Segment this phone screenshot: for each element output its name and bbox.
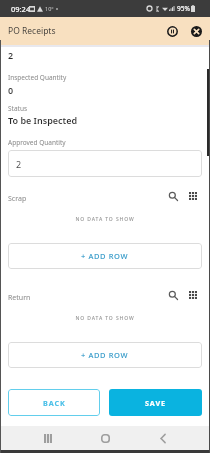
staticText: 2 xyxy=(16,158,22,170)
staticText: + ADD ROW xyxy=(81,350,129,360)
staticText: 0 xyxy=(8,84,14,96)
staticText: 2 xyxy=(8,49,14,61)
staticText: Inspected Quantity xyxy=(8,73,67,82)
button[interactable]: Search xyxy=(165,191,181,201)
button[interactable]: + ADD ROW xyxy=(8,342,202,368)
button[interactable]: SAVE xyxy=(109,389,202,416)
staticText: Scrap xyxy=(8,194,27,204)
staticText: 10° xyxy=(45,5,54,12)
button[interactable]: 2 xyxy=(8,150,202,177)
button[interactable]: Back xyxy=(153,428,173,448)
button[interactable]: Home xyxy=(95,428,115,448)
staticText: To be Inspected xyxy=(8,114,78,126)
button[interactable]: Recents xyxy=(38,428,58,448)
staticText: 09:24 xyxy=(11,4,31,14)
button[interactable]: Grid view xyxy=(185,191,201,201)
button[interactable]: Pause xyxy=(163,22,182,41)
staticText: NO DATA TO SHOW xyxy=(8,315,202,322)
button[interactable]: Search xyxy=(165,290,181,300)
staticText: + ADD ROW xyxy=(81,251,129,261)
staticText: Status xyxy=(8,104,28,113)
staticText: BACK xyxy=(43,398,66,408)
staticText: SAVE xyxy=(145,398,166,408)
button[interactable]: BACK xyxy=(8,389,100,416)
staticText: NO DATA TO SHOW xyxy=(8,216,202,223)
button[interactable]: + ADD ROW xyxy=(8,243,202,269)
staticText: PO Receipts xyxy=(8,25,56,37)
staticText: Approved Quantity xyxy=(8,138,66,147)
staticText: 95% xyxy=(177,4,190,13)
staticText: Return xyxy=(8,293,31,303)
button[interactable]: Close xyxy=(187,22,206,41)
button[interactable]: Grid view xyxy=(185,290,201,300)
